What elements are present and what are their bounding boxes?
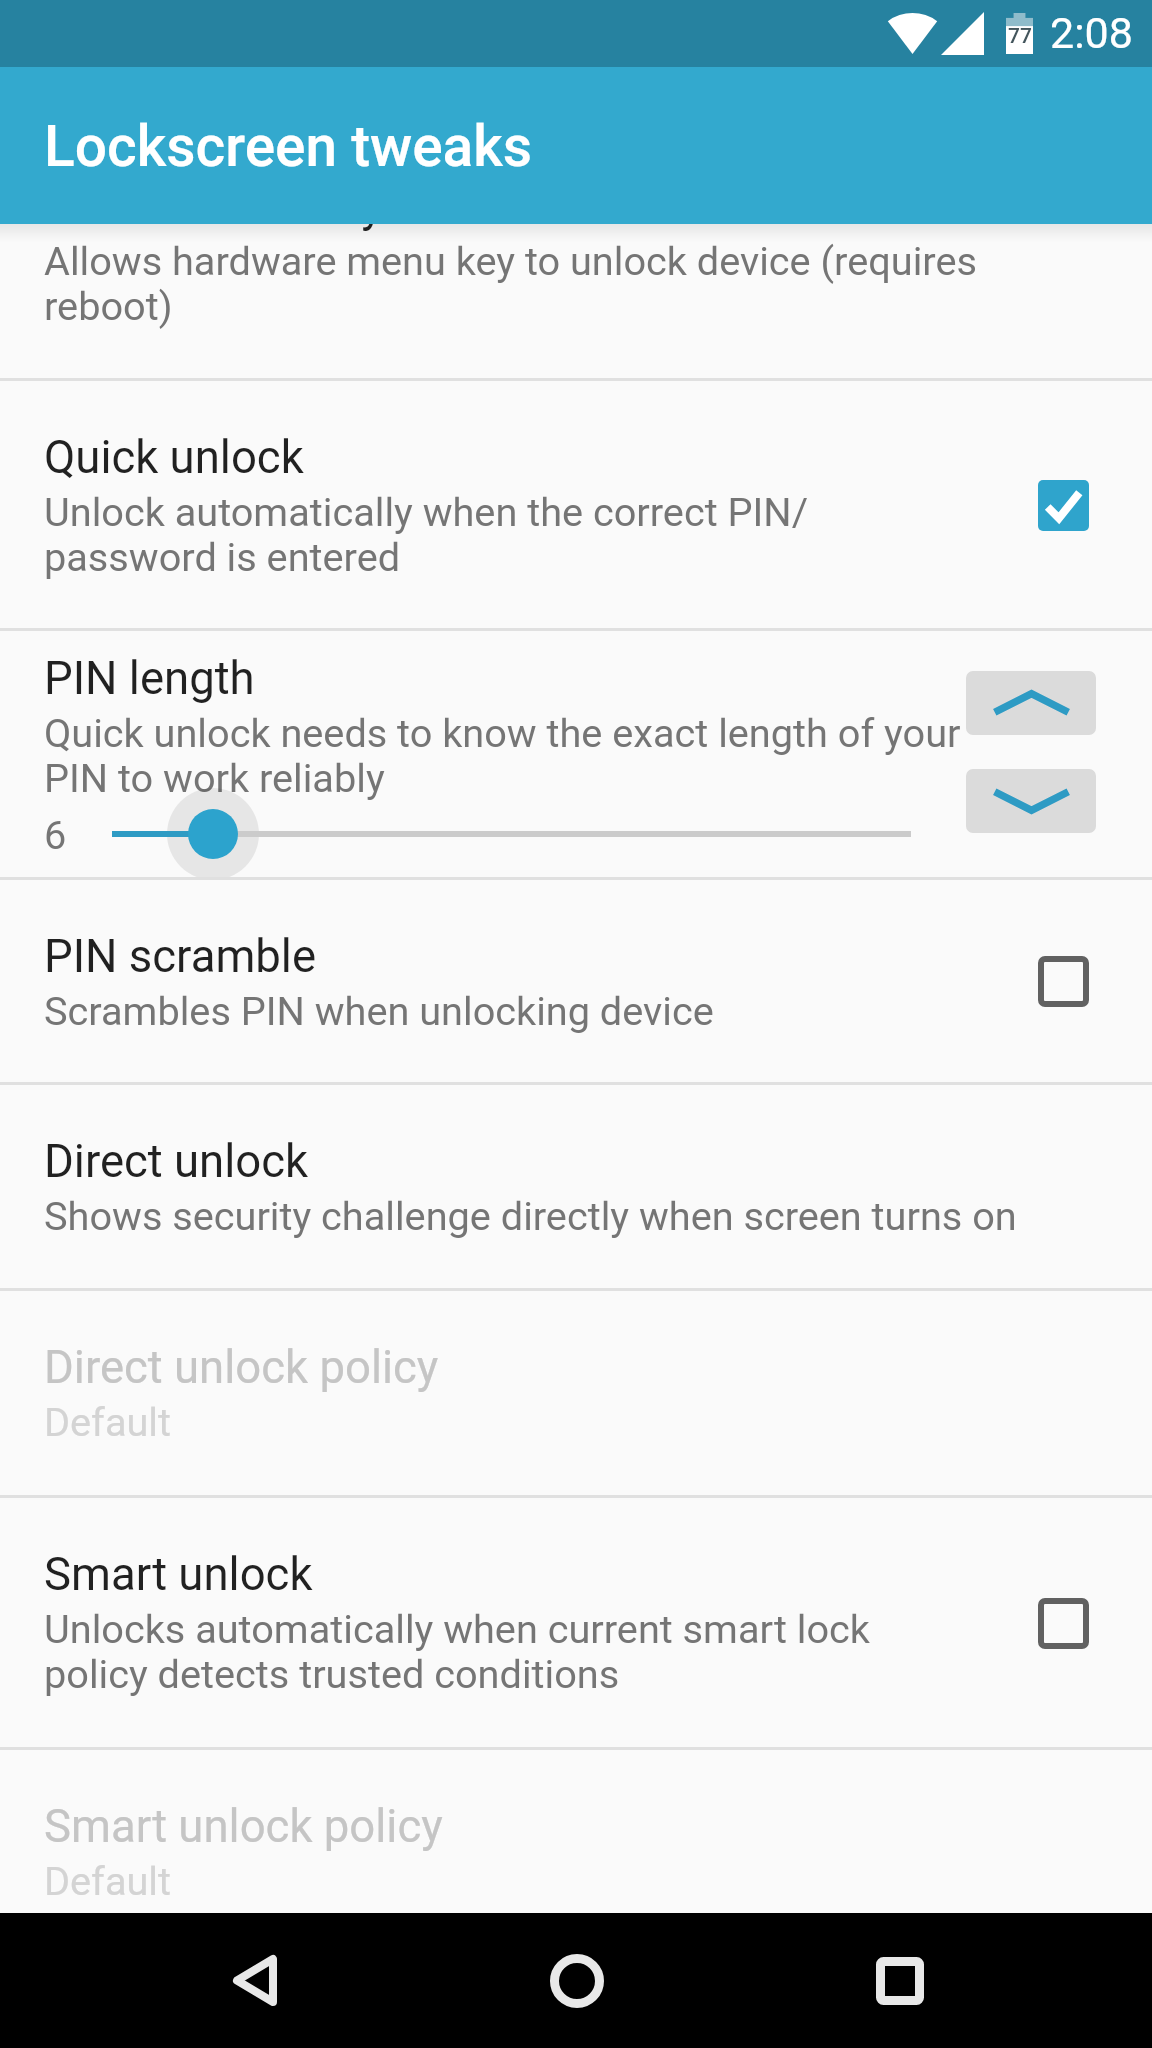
staticText: Default <box>44 1858 171 1905</box>
button[interactable]: Quick unlock <box>0 381 1152 628</box>
button[interactable]: PIN length <box>0 631 1152 877</box>
button[interactable]: Increase PIN length <box>966 671 1096 735</box>
button[interactable]: Enabled, checked <box>1013 455 1113 555</box>
button[interactable]: Recent apps <box>780 1913 1020 2048</box>
staticText: 77 <box>1008 24 1032 49</box>
staticText: PIN scramble <box>44 930 317 983</box>
button[interactable]: Direct unlock <box>0 1085 1152 1288</box>
staticText: 6 <box>44 812 67 859</box>
staticText: Quick unlock needs to know the exact len… <box>44 710 961 802</box>
staticText: Shows security challenge directly when s… <box>44 1193 1017 1240</box>
staticText: Scrambles PIN when unlocking device <box>44 988 714 1035</box>
button[interactable]: Decrease PIN length <box>966 769 1096 833</box>
staticText: Menu unlock key <box>44 180 383 233</box>
staticText: PIN length <box>44 652 255 705</box>
staticText: Direct unlock policy <box>44 1341 439 1394</box>
staticText: Direct unlock <box>44 1135 309 1188</box>
button[interactable]: Home <box>457 1913 697 2048</box>
staticText: Smart unlock policy <box>44 1800 443 1853</box>
staticText: Smart unlock <box>44 1548 313 1601</box>
button[interactable]: Direct unlock policy <box>0 1291 1152 1495</box>
staticText: Allows hardware menu key to unlock devic… <box>44 238 977 330</box>
staticText: Unlock automatically when the correct PI… <box>44 489 809 581</box>
button[interactable]: PIN scramble <box>0 880 1152 1082</box>
button[interactable]: Smart unlock <box>0 1498 1152 1747</box>
button[interactable]: Disabled, unchecked <box>1013 931 1113 1031</box>
button[interactable]: Disabled, unchecked <box>1013 1573 1113 1673</box>
button[interactable]: Menu unlock key <box>0 224 1152 378</box>
staticText: 2:08 <box>1050 8 1133 58</box>
staticText: Default <box>44 1399 171 1446</box>
staticText: Quick unlock <box>44 431 304 484</box>
staticText: Unlocks automatically when current smart… <box>44 1606 870 1698</box>
staticText: Lockscreen tweaks <box>44 113 533 179</box>
button[interactable]: Smart unlock policy <box>0 1750 1152 1913</box>
button[interactable]: Back <box>134 1913 374 2048</box>
